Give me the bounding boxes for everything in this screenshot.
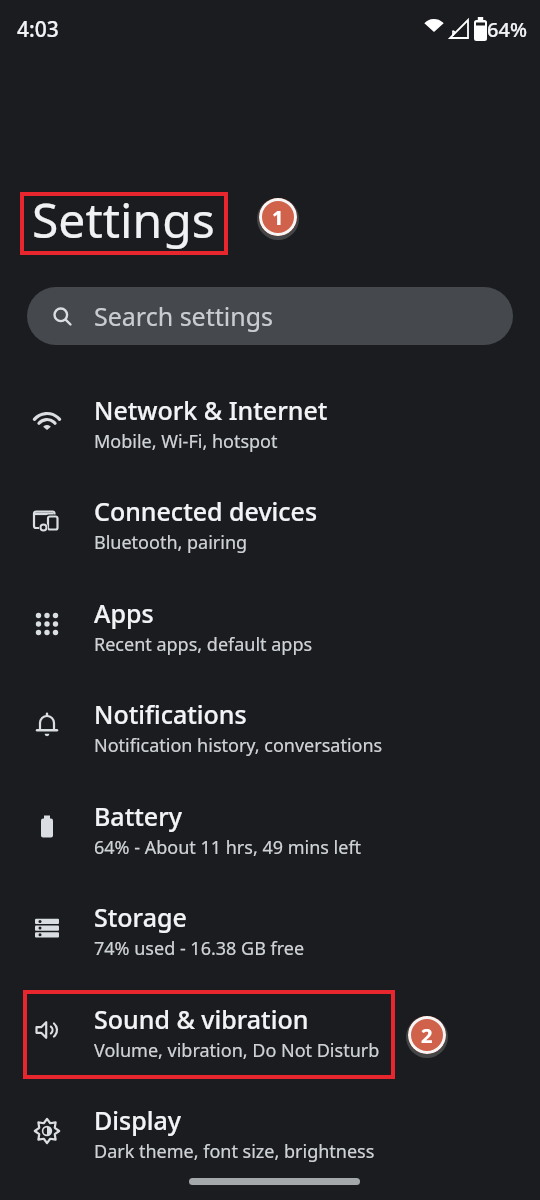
staticText: Apps xyxy=(94,596,154,630)
staticText: Network & Internet xyxy=(94,393,328,427)
staticText: Battery xyxy=(94,799,182,833)
button[interactable]: 1 xyxy=(259,198,297,236)
staticText: Notifications xyxy=(94,697,247,731)
staticText: Notification history, conversations xyxy=(94,733,383,758)
staticText: 4:03 xyxy=(17,15,59,44)
staticText: 2 xyxy=(421,1022,433,1049)
staticText: Storage xyxy=(94,900,187,934)
staticText: Dark theme, font size, brightness xyxy=(94,1139,375,1164)
staticText: Bluetooth, pairing xyxy=(94,530,248,555)
button[interactable]: Battery xyxy=(0,766,540,867)
button[interactable]: Network & Internet xyxy=(0,360,540,461)
button[interactable]: Storage xyxy=(0,867,540,968)
staticText: 64% xyxy=(487,16,527,43)
staticText: Display xyxy=(94,1103,181,1137)
button[interactable]: 2 xyxy=(408,1016,446,1054)
button[interactable]: Sound & vibration xyxy=(0,969,540,1070)
staticText: Connected devices xyxy=(94,494,318,528)
staticText: 1 xyxy=(272,204,284,231)
button[interactable]: Apps xyxy=(0,563,540,664)
staticText: Settings xyxy=(32,187,215,252)
staticText: 64% - About 11 hrs, 49 mins left xyxy=(94,835,362,860)
staticText: Mobile, Wi-Fi, hotspot xyxy=(94,429,278,454)
staticText: 74% used - 16.38 GB free xyxy=(94,936,305,961)
button[interactable]: Connected devices xyxy=(0,461,540,562)
staticText: Volume, vibration, Do Not Disturb xyxy=(94,1038,380,1063)
button[interactable]: Search settings xyxy=(27,287,513,345)
staticText: Sound & vibration xyxy=(94,1002,309,1036)
staticText: Recent apps, default apps xyxy=(94,632,313,657)
button[interactable]: Display xyxy=(0,1070,540,1171)
button[interactable]: Notifications xyxy=(0,664,540,765)
staticText: Search settings xyxy=(94,299,274,333)
